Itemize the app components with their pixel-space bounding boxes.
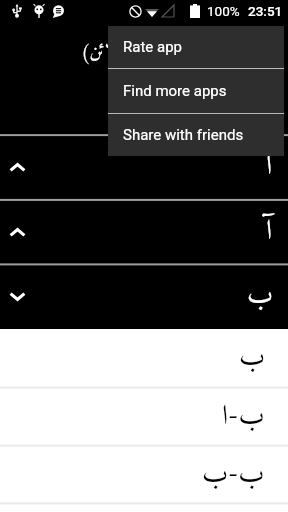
staticText: 23:51: [248, 3, 283, 19]
staticText: Find more apps: [123, 82, 227, 100]
button[interactable]: اردو لغت ڈکشنری (آف لائن): [0, 22, 288, 135]
button[interactable]: Find more apps: [108, 69, 284, 113]
button[interactable]: ب: [0, 329, 288, 388]
staticText: ب: [247, 272, 273, 321]
staticText: ب: [239, 334, 265, 383]
button[interactable]: Share with friends: [108, 114, 284, 156]
button[interactable]: ب-ا: [0, 388, 288, 446]
staticText: ا: [266, 143, 273, 192]
button[interactable]: Expand: [0, 264, 288, 329]
staticText: ب-ب: [202, 451, 265, 500]
button[interactable]: Collapse: [0, 200, 288, 265]
button[interactable]: ب-ب: [0, 446, 288, 504]
other: Expand: [9, 292, 26, 301]
other: Collapse: [9, 228, 26, 237]
staticText: ب-ا: [222, 393, 265, 442]
button[interactable]: Collapse: [0, 135, 288, 200]
staticText: Rate app: [123, 38, 182, 56]
staticText: 100%: [207, 3, 240, 19]
staticText: اردو لغت ڈکشنری (آف لائن): [81, 36, 275, 69]
other: Collapse: [9, 163, 26, 172]
staticText: Share with friends: [123, 126, 244, 144]
button[interactable]: Rate app: [108, 26, 284, 68]
staticText: آ: [266, 208, 273, 257]
